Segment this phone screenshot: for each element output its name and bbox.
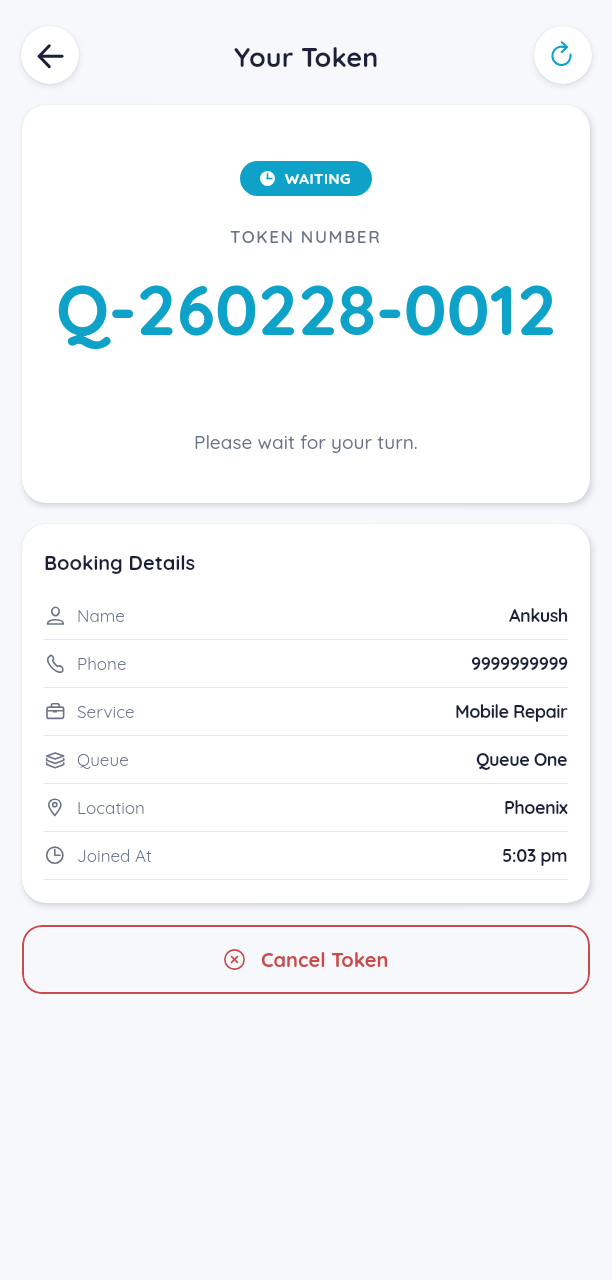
- staticText: WAITING: [285, 169, 352, 188]
- button[interactable]: Back: [21, 26, 79, 84]
- staticText: TOKEN NUMBER: [230, 226, 382, 247]
- staticText: Service: [77, 701, 135, 722]
- staticText: Booking Details: [44, 550, 196, 575]
- staticText: Ankush: [509, 604, 568, 627]
- button[interactable]: Service: [44, 688, 568, 735]
- button[interactable]: Joined At: [44, 832, 568, 879]
- staticText: Phoenix: [504, 796, 568, 819]
- staticText: Your Token: [234, 40, 379, 74]
- staticText: Please wait for your turn.: [194, 430, 418, 454]
- staticText: Queue: [77, 749, 129, 770]
- button[interactable]: Name: [44, 592, 568, 639]
- staticText: Cancel Token: [261, 947, 389, 972]
- staticText: Mobile Repair: [455, 700, 568, 723]
- button[interactable]: Location: [44, 784, 568, 831]
- staticText: Q-260228-0012: [56, 265, 557, 353]
- staticText: Name: [77, 605, 125, 626]
- staticText: Joined At: [77, 845, 152, 866]
- button[interactable]: Refresh: [534, 26, 592, 84]
- button[interactable]: Cancel Token: [22, 925, 590, 994]
- button[interactable]: WAITING: [240, 161, 372, 196]
- staticText: 9999999999: [471, 652, 568, 675]
- staticText: Location: [77, 797, 145, 818]
- staticText: Phone: [77, 653, 127, 674]
- button[interactable]: Queue: [44, 736, 568, 783]
- staticText: 5:03 pm: [502, 844, 568, 867]
- button[interactable]: Phone: [44, 640, 568, 687]
- staticText: Queue One: [476, 748, 568, 771]
